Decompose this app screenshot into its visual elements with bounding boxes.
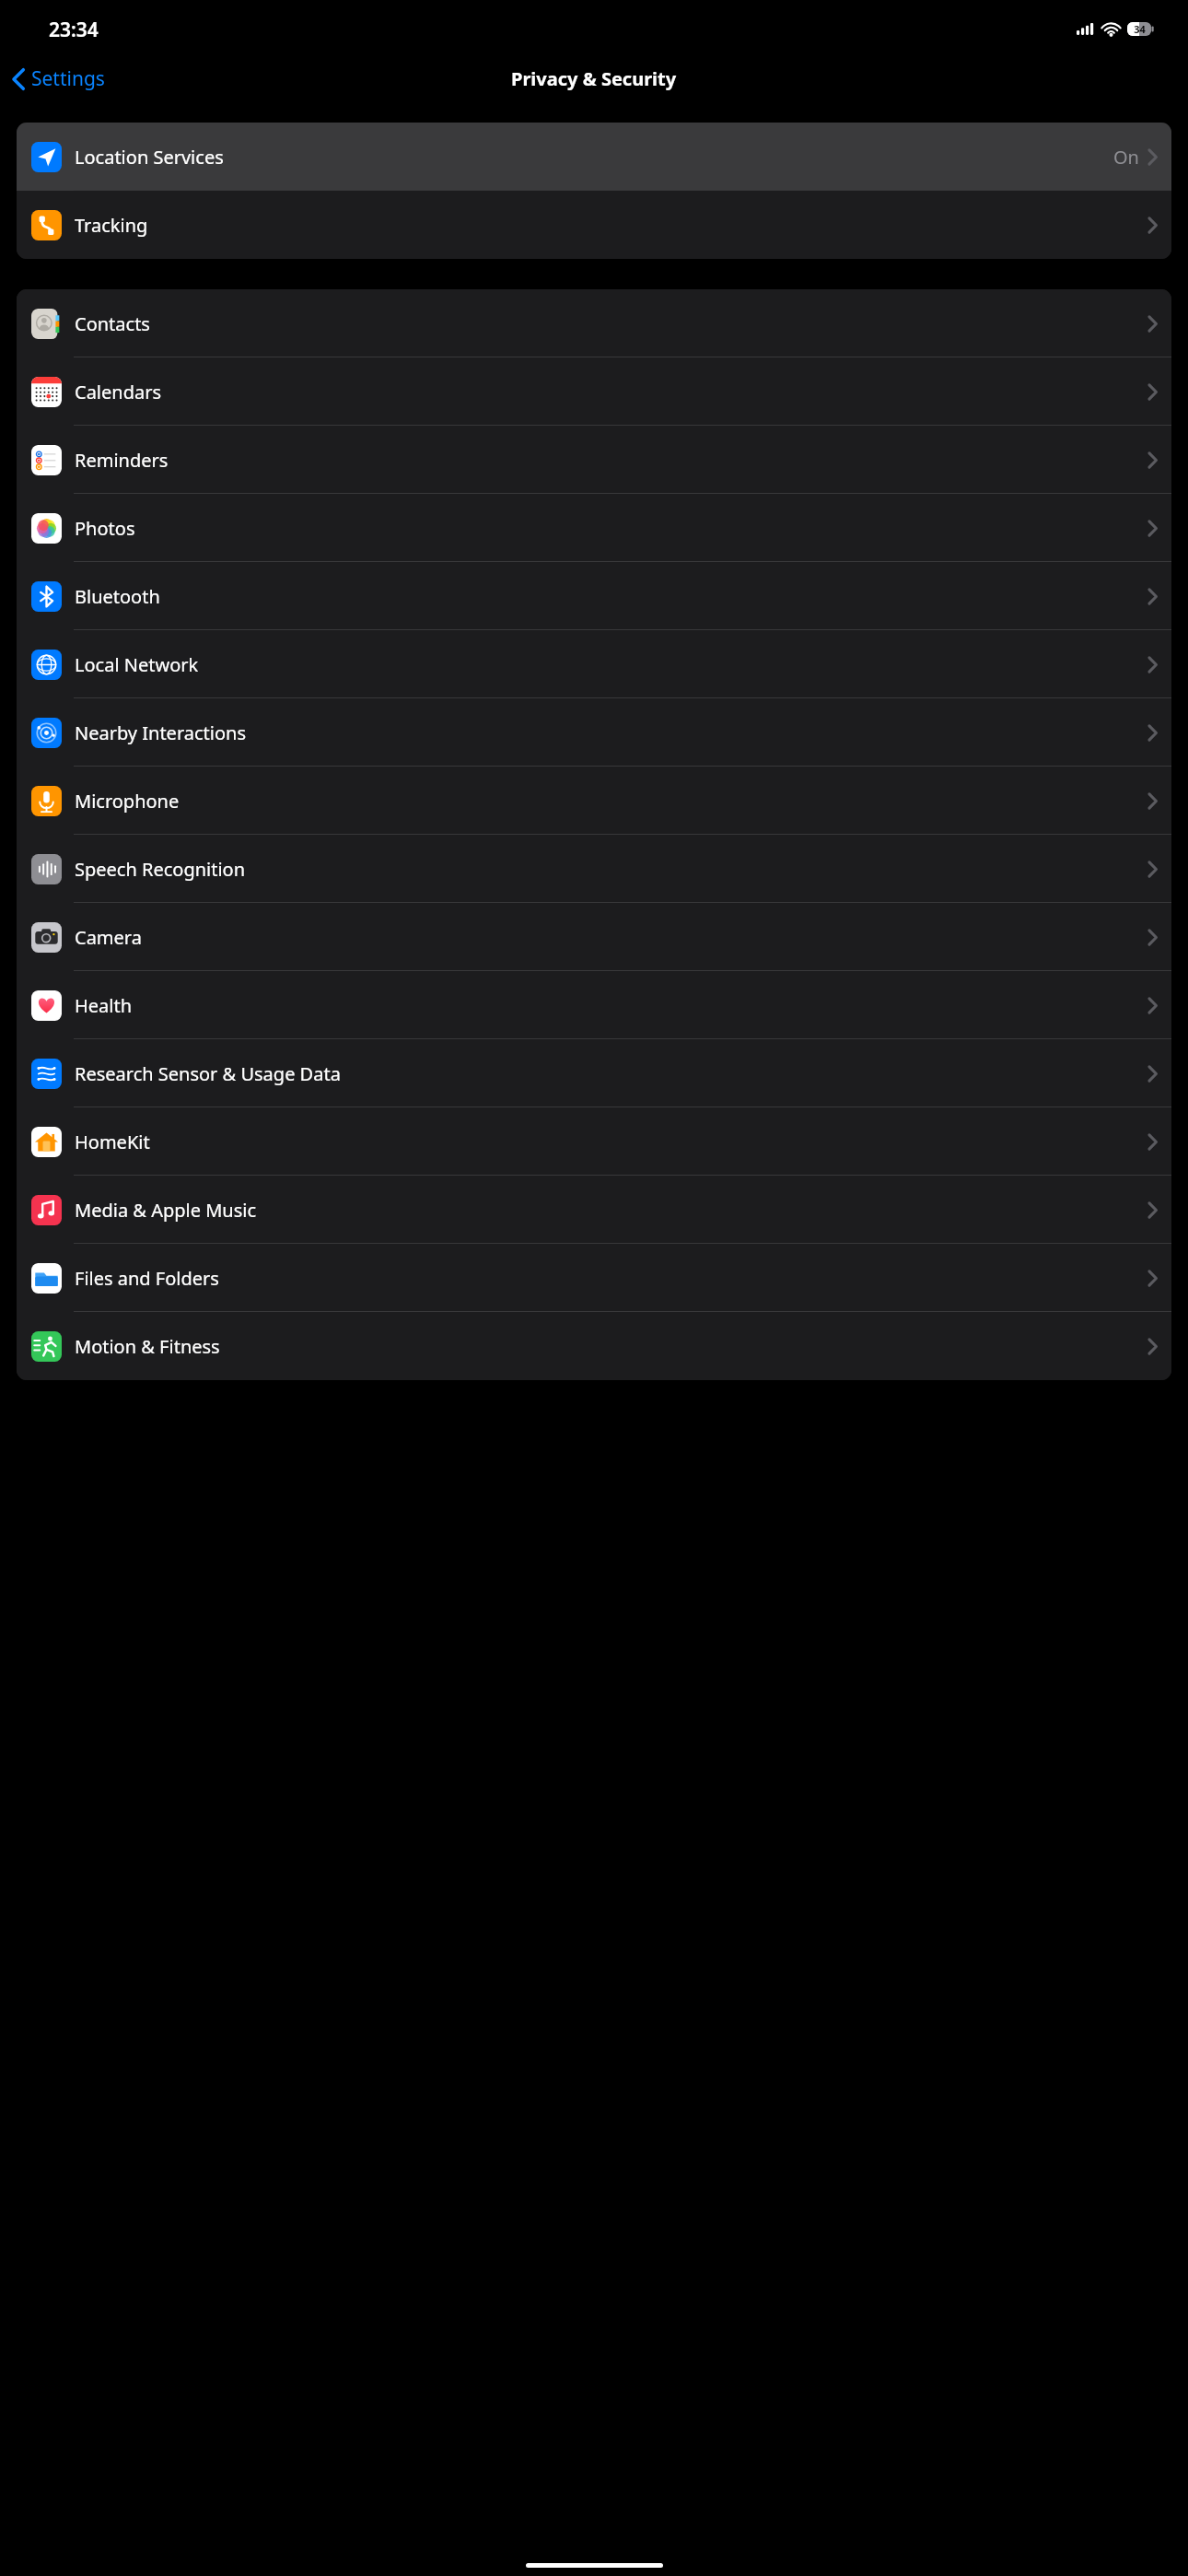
button[interactable]: Back xyxy=(12,65,105,92)
button[interactable]: Health xyxy=(17,971,1171,1039)
button[interactable]: Motion & Fitness xyxy=(17,1312,1171,1380)
staticText: Camera xyxy=(75,925,142,950)
staticText: Files and Folders xyxy=(75,1266,219,1291)
staticText: Media & Apple Music xyxy=(75,1198,256,1223)
staticText: Research Sensor & Usage Data xyxy=(75,1061,341,1086)
staticText: Motion & Fitness xyxy=(75,1334,220,1359)
other: Back xyxy=(12,68,25,90)
staticText: Nearby Interactions xyxy=(75,720,246,745)
button[interactable]: Speech Recognition xyxy=(17,835,1171,903)
staticText: HomeKit xyxy=(75,1130,150,1154)
button[interactable]: Nearby Interactions xyxy=(17,698,1171,767)
button[interactable]: Location Services xyxy=(17,123,1171,191)
staticText: Tracking xyxy=(75,213,148,238)
button[interactable]: Bluetooth xyxy=(17,562,1171,630)
staticText: Reminders xyxy=(75,448,169,473)
button[interactable]: Camera xyxy=(17,903,1171,971)
staticText: Location Services xyxy=(75,145,224,170)
button[interactable]: Photos xyxy=(17,494,1171,562)
staticText: Photos xyxy=(75,516,135,541)
staticText: 23:34 xyxy=(49,17,99,43)
staticText: On xyxy=(1113,145,1139,170)
staticText: Health xyxy=(75,993,133,1018)
button[interactable]: Tracking xyxy=(17,191,1171,259)
button[interactable]: HomeKit xyxy=(17,1107,1171,1176)
staticText: Calendars xyxy=(75,380,162,404)
button[interactable]: Media & Apple Music xyxy=(17,1176,1171,1244)
staticText: Local Network xyxy=(75,652,199,677)
staticText: Bluetooth xyxy=(75,584,160,609)
button[interactable]: Contacts xyxy=(17,289,1171,357)
staticText: Privacy & Security xyxy=(511,66,677,91)
button[interactable]: Calendars xyxy=(17,357,1171,426)
button[interactable]: Microphone xyxy=(17,767,1171,835)
staticText: Settings xyxy=(31,65,105,92)
staticText: Speech Recognition xyxy=(75,857,246,882)
button[interactable]: Files and Folders xyxy=(17,1244,1171,1312)
button[interactable]: Reminders xyxy=(17,426,1171,494)
staticText: 34 xyxy=(1134,22,1146,36)
button[interactable]: Research Sensor & Usage Data xyxy=(17,1039,1171,1107)
button[interactable]: Local Network xyxy=(17,630,1171,698)
staticText: Microphone xyxy=(75,789,180,814)
staticText: Contacts xyxy=(75,311,150,336)
